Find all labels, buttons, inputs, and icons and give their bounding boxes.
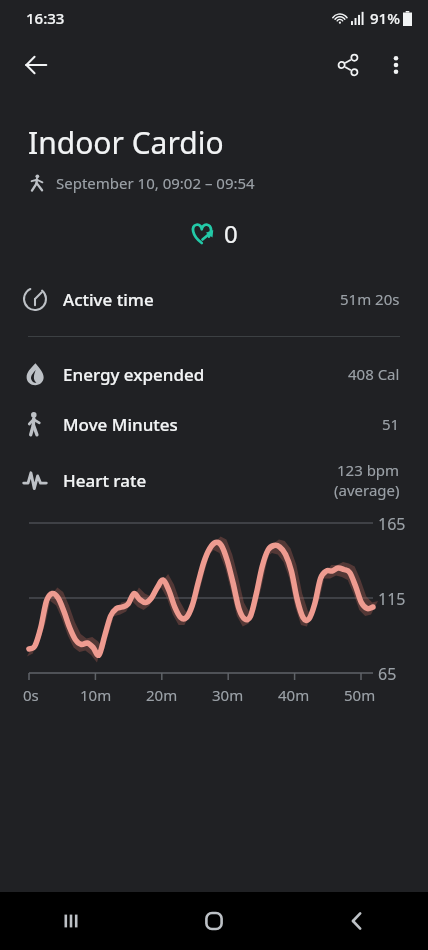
staticText: Active time	[63, 288, 340, 311]
button[interactable]: Recent apps	[43, 893, 99, 949]
button[interactable]: Back	[12, 41, 60, 89]
button[interactable]: Move Minutes	[0, 403, 428, 445]
button[interactable]: Heart rate	[0, 453, 428, 507]
staticText: 65	[378, 663, 397, 685]
button[interactable]: More options	[372, 41, 420, 89]
staticText: 0s	[23, 685, 39, 705]
staticText: 408 Cal	[348, 364, 400, 384]
staticText: 51m 20s	[340, 289, 400, 309]
staticText: (average)	[334, 480, 400, 500]
staticText: 115	[378, 588, 406, 610]
staticText: 123 bpm	[337, 460, 400, 480]
staticText: September 10, 09:02 – 09:54	[56, 173, 255, 193]
staticText: 0	[224, 217, 238, 250]
staticText: 51	[382, 414, 400, 434]
staticText: Energy expended	[63, 363, 348, 386]
staticText: Move Minutes	[63, 413, 382, 436]
staticText: 30m	[212, 685, 244, 705]
button[interactable]: Energy expended	[0, 353, 428, 395]
button[interactable]: Active time	[0, 278, 428, 320]
button[interactable]: Back	[329, 893, 385, 949]
staticText: 50m	[344, 685, 376, 705]
staticText: 10m	[80, 685, 112, 705]
staticText: 20m	[146, 685, 178, 705]
button[interactable]: Share	[324, 41, 372, 89]
staticText: 91%	[370, 8, 400, 28]
staticText: Heart rate	[63, 469, 334, 492]
staticText: 165	[378, 513, 406, 535]
staticText: 16:33	[26, 8, 65, 28]
button[interactable]: Home	[186, 893, 242, 949]
staticText: Indoor Cardio	[28, 122, 224, 163]
staticText: 40m	[278, 685, 310, 705]
